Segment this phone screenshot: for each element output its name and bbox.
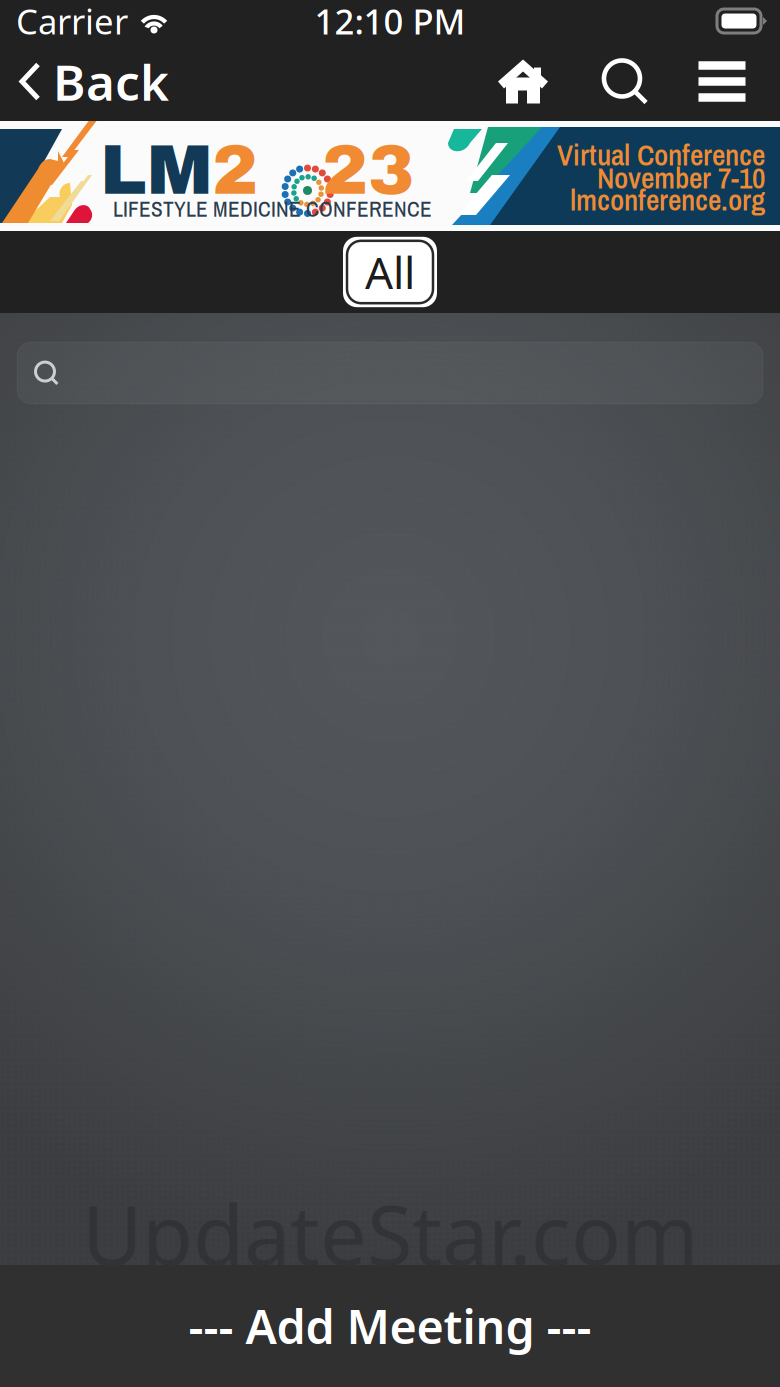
button[interactable]: Search bbox=[575, 42, 675, 120]
staticText: LM bbox=[100, 133, 213, 208]
button[interactable]: --- Add Meeting --- bbox=[0, 1265, 780, 1387]
button[interactable]: All bbox=[343, 237, 437, 307]
button[interactable]: Back bbox=[0, 42, 185, 120]
staticText: 2 bbox=[212, 133, 258, 208]
staticText: UpdateStar.com bbox=[82, 1178, 698, 1288]
staticText: lmconference.org bbox=[570, 180, 765, 220]
staticText: November 7-10 bbox=[597, 158, 765, 198]
staticText: Carrier bbox=[16, 0, 128, 44]
button[interactable]: Menu bbox=[675, 42, 769, 120]
staticText: All bbox=[365, 243, 415, 301]
button[interactable] bbox=[17, 342, 763, 404]
staticText: 23 bbox=[322, 133, 414, 208]
button[interactable]: Home bbox=[471, 42, 575, 120]
staticText: 12:10 PM bbox=[314, 0, 465, 44]
staticText: Back bbox=[53, 49, 169, 114]
staticText: --- Add Meeting --- bbox=[188, 1295, 591, 1357]
staticText: Virtual Conference bbox=[557, 135, 765, 175]
staticText: LIFESTYLE MEDICINE CONFERENCE bbox=[113, 195, 432, 223]
